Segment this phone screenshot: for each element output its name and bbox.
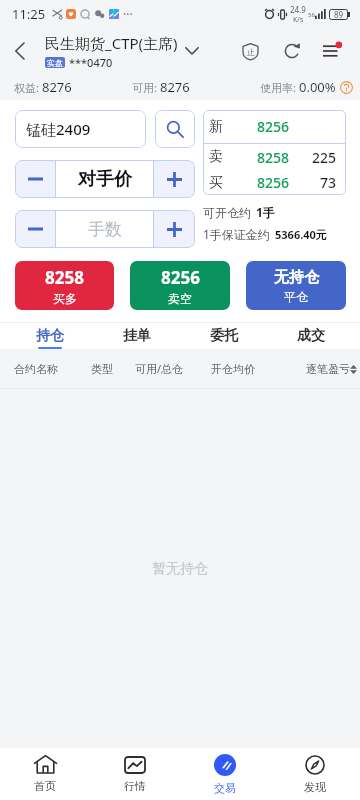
staticText: 委托 (210, 327, 238, 345)
staticText: K/s (293, 15, 304, 25)
staticText: 类型 (91, 362, 135, 376)
staticText: 交易 (214, 781, 236, 795)
staticText: 11:25 (12, 5, 46, 23)
staticText: 挂单 (123, 327, 151, 345)
button[interactable]: 8256 (130, 261, 230, 310)
button[interactable]: 无持仓 (246, 261, 346, 310)
button[interactable]: 交易 (180, 748, 270, 800)
staticText: 无持仓 (274, 268, 319, 287)
button[interactable]: 减少 (15, 210, 55, 248)
staticText: 逐笔盈亏 (306, 362, 350, 376)
staticText: 8276 (160, 78, 190, 96)
staticText: 买多 (53, 291, 77, 306)
staticText: 成交 (297, 327, 325, 345)
staticText: 73 (320, 173, 337, 192)
staticText: 可开仓约 (203, 205, 251, 220)
button[interactable]: 增加 (154, 210, 195, 248)
staticText: 可用/总仓 (135, 361, 211, 376)
button[interactable]: 发现 (270, 748, 360, 800)
staticText: 225 (312, 148, 337, 167)
button[interactable]: 对手价 (56, 160, 153, 198)
button[interactable]: 持仓 (6, 323, 93, 349)
staticText: 锰硅2409 (26, 119, 91, 139)
staticText: 卖 (209, 148, 257, 166)
staticText: 买 (209, 174, 257, 192)
button[interactable]: 委托 (180, 323, 267, 349)
button[interactable]: 增加 (154, 160, 195, 198)
button[interactable]: 手数 (56, 210, 153, 248)
staticText: 8258 (45, 266, 84, 289)
button[interactable]: 8258 (15, 261, 114, 310)
staticText: 对手价 (78, 168, 132, 191)
staticText: 1手保证金约 (203, 226, 270, 242)
staticText: 新 (209, 118, 257, 136)
staticText: 8256 (257, 173, 290, 192)
staticText: 使用率: (260, 80, 296, 95)
button[interactable]: 挂单 (93, 323, 180, 349)
staticText: 89 (334, 9, 344, 20)
staticText: 8256 (161, 266, 200, 289)
staticText: 可用: (132, 80, 157, 95)
button[interactable]: 切换账户 (178, 28, 206, 74)
button[interactable]: 菜单 (313, 28, 354, 74)
staticText: 开仓均价 (211, 362, 294, 376)
staticText: ··· (123, 6, 133, 22)
staticText: 权益: (14, 80, 39, 95)
staticText: 持仓 (36, 327, 64, 345)
staticText: 止 (247, 47, 255, 57)
button[interactable]: 锰硅2409 (15, 110, 146, 148)
button[interactable]: 风控 (229, 28, 271, 74)
staticText: 8276 (42, 78, 72, 96)
button[interactable]: 减少 (15, 160, 55, 198)
button[interactable]: 行情 (90, 748, 180, 800)
staticText: 手数 (88, 219, 122, 240)
button[interactable]: 返回 (0, 28, 39, 74)
staticText: 8256 (257, 117, 290, 136)
staticText: 卖空 (168, 291, 192, 306)
staticText: 暂无持仓 (152, 560, 208, 578)
staticText: 5366.40元 (275, 227, 327, 242)
staticText: 发现 (304, 780, 326, 794)
staticText: 实盘 (47, 58, 63, 68)
staticText: 平仓 (284, 289, 308, 304)
staticText: 24.9 (290, 4, 306, 15)
button[interactable]: 成交 (267, 323, 354, 349)
staticText: 民生期货_CTP(主席) (45, 33, 178, 53)
staticText: 0.00% (299, 78, 336, 96)
button[interactable]: 首页 (0, 748, 90, 800)
button[interactable]: 搜索 (155, 110, 195, 148)
staticText: ***0470 (69, 55, 113, 70)
staticText: 1手 (256, 204, 275, 220)
staticText: 行情 (124, 779, 146, 793)
staticText: 56 (308, 11, 315, 19)
button[interactable]: 刷新 (271, 28, 313, 74)
staticText: 合约名称 (14, 362, 91, 376)
staticText: 首页 (34, 779, 56, 793)
staticText: 8258 (257, 148, 290, 167)
